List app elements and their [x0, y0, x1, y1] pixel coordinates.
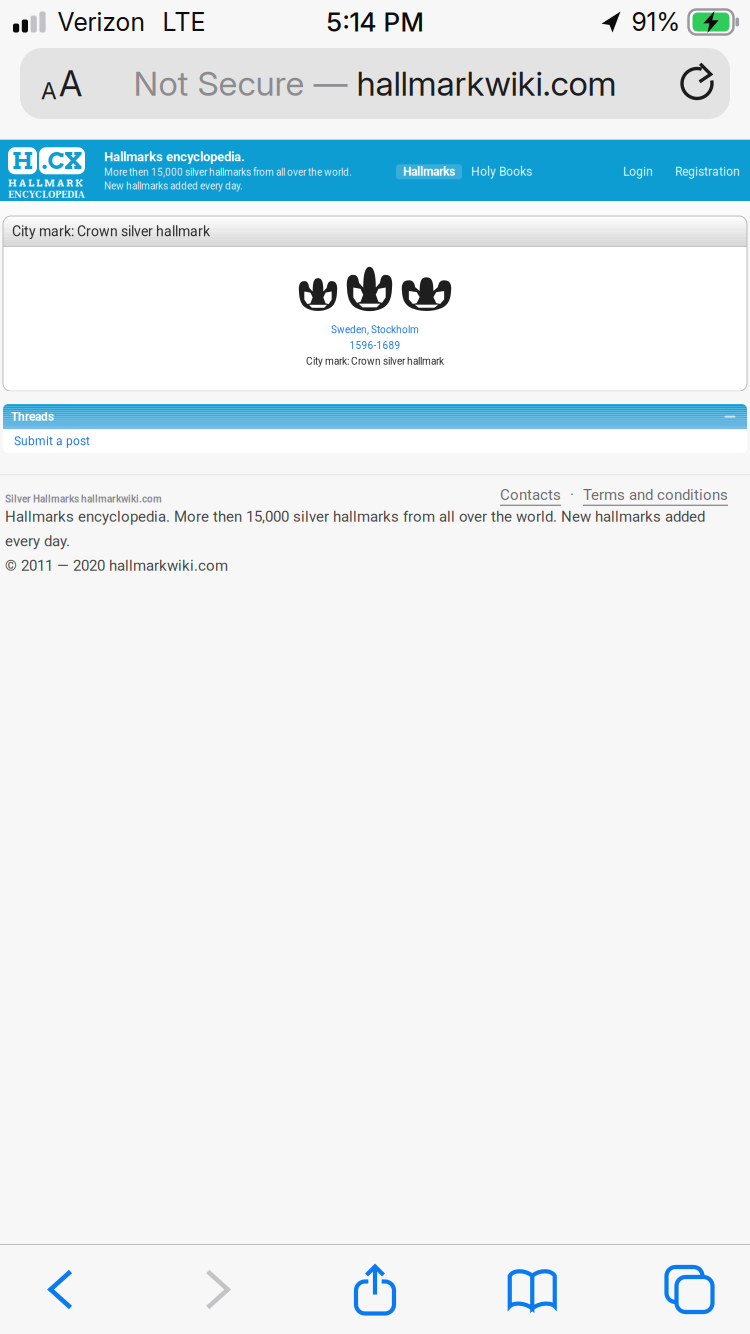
staticText: More then 15,000 silver hallmarks from a… [104, 166, 352, 178]
staticText: Silver Hallmarks hallmarkwiki.com [5, 493, 162, 505]
staticText: Verizon [58, 7, 145, 37]
button[interactable]: Holy Books [462, 164, 541, 179]
staticText: every day. [5, 532, 70, 550]
staticText: A [59, 62, 82, 105]
staticText: · [570, 486, 574, 504]
button[interactable]: Bookmarks [474, 1245, 591, 1334]
staticText: 91% [631, 7, 680, 37]
staticText: Registration [675, 165, 740, 179]
button[interactable]: Contacts [500, 486, 561, 506]
button[interactable]: Tabs [631, 1245, 748, 1334]
button[interactable]: Terms and conditions [583, 486, 728, 506]
staticText: City mark: Crown silver hallmark [12, 223, 210, 240]
staticText: City mark: Crown silver hallmark [306, 355, 444, 367]
staticText: 1596-1689 [349, 340, 400, 351]
button[interactable]: Share [316, 1245, 433, 1334]
button[interactable]: A [20, 48, 730, 119]
staticText: New hallmarks added every day. [104, 180, 243, 192]
staticText: Threads [11, 410, 54, 424]
staticText: Sweden, Stockholm [331, 324, 419, 336]
button[interactable]: Sweden, Stockholm [331, 310, 419, 336]
staticText: Submit a post [14, 434, 90, 448]
staticText: Terms and conditions [583, 486, 728, 504]
button[interactable]: Back [2, 1245, 119, 1334]
staticText: Hallmarks encyclopedia. More then 15,000… [5, 508, 705, 525]
staticText: H [12, 147, 33, 175]
button[interactable]: Forward [159, 1245, 276, 1334]
staticText: Login [623, 165, 653, 179]
staticText: Hallmarks [403, 165, 455, 179]
staticText: .CX [41, 147, 82, 175]
button[interactable]: Login [613, 164, 663, 179]
button[interactable]: Hallmarks [396, 164, 462, 179]
button[interactable]: Submit a post [3, 429, 747, 453]
button[interactable]: Registration [663, 164, 740, 179]
button[interactable]: 1596-1689 [349, 336, 400, 351]
staticText: hallmarkwiki.com [356, 63, 616, 104]
staticText: Holy Books [471, 165, 532, 179]
staticText: A [41, 77, 57, 105]
staticText: LTE [163, 7, 206, 37]
staticText: H A L L M A R K [8, 177, 83, 189]
staticText: Hallmarks encyclopedia. [104, 149, 245, 164]
staticText: ENCYCLOPEDIA [8, 190, 85, 200]
staticText: Contacts [500, 486, 561, 504]
button[interactable]: Collapse Threads [719, 406, 741, 427]
staticText: 5:14 PM [326, 6, 423, 38]
staticText: © 2011 — 2020 hallmarkwiki.com [5, 557, 228, 574]
staticText: Not Secure — [133, 63, 356, 104]
